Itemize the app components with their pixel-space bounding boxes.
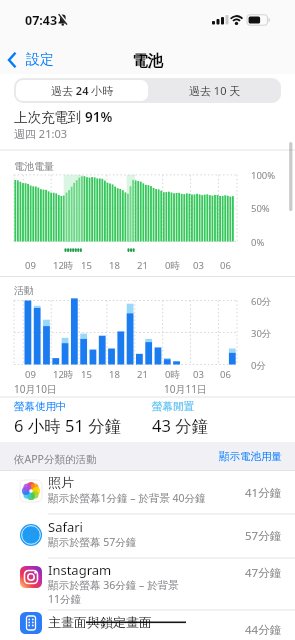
staticText: 顯示電池用量 [219,450,282,463]
staticText: 15 [81,368,92,381]
staticText: 0% [251,236,265,249]
button[interactable]: Safari [0,514,295,558]
staticText: 03 [193,368,204,381]
staticText: 過去 10 天 [189,83,241,98]
staticText: 12時 [53,259,74,272]
button[interactable]: 過去 10 天 [148,78,282,103]
staticText: 電池 [132,51,163,71]
staticText: 44分鐘 [245,622,282,638]
staticText: 09 [25,259,36,272]
staticText: 顯示於螢幕 36分鐘 – 於背景 [48,578,179,592]
staticText: 0時 [165,259,180,272]
staticText: 06 [220,368,231,381]
staticText: 照片 [48,474,74,490]
staticText: 100% [251,169,276,182]
staticText: 6 小時 51 分鐘 [14,414,122,437]
staticText: 11分鐘 [48,592,82,606]
staticText: 21 [137,259,148,272]
staticText: 10月11日 [164,382,207,396]
staticText: 依APP分類的活動 [14,452,97,466]
staticText: 12時 [53,368,74,381]
staticText: 09 [25,368,36,381]
staticText: 18 [109,259,120,272]
staticText: 03 [193,259,204,272]
staticText: 0時 [165,368,180,381]
button[interactable]: Instagram [0,558,295,610]
staticText: 57分鐘 [245,528,282,544]
staticText: Instagram [48,561,112,579]
staticText: 50% [251,202,270,215]
staticText: 43 分鐘 [152,414,209,437]
staticText: 顯示於螢幕 57分鐘 [48,535,137,549]
staticText: 電池電量 [14,160,54,173]
staticText: 10月10日 [14,382,57,396]
staticText: 30分 [251,327,272,340]
staticText: 設定 [26,51,54,69]
staticText: 螢幕閒置 [152,400,194,413]
staticText: 06 [220,259,231,272]
staticText: 0分 [251,359,266,372]
staticText: Safari [48,518,83,536]
staticText: 07:43 [25,12,58,29]
staticText: 41分鐘 [245,485,282,501]
staticText: 螢幕使用中 [14,400,67,413]
staticText: 主畫面與鎖定畫面 [48,614,152,630]
staticText: 上次充電到 91% [14,108,113,126]
staticText: 活動 [14,284,34,297]
staticText: 21 [137,368,148,381]
button[interactable]: 設定 [6,48,54,72]
button[interactable]: 照片 [0,471,295,514]
staticText: 15 [81,259,92,272]
staticText: 過去 24 小時 [51,83,114,98]
staticText: 60分 [251,295,272,308]
staticText: 18 [109,368,120,381]
staticText: 週四 21:03 [14,126,67,141]
staticText: 47分鐘 [245,565,282,581]
button[interactable]: 顯示電池用量 [182,450,282,468]
staticText: 顯示於螢幕1分鐘 – 於背景 40分鐘 [48,491,206,505]
button[interactable]: 過去 24 小時 [16,80,148,101]
button[interactable]: 主畫面與鎖定畫面 [0,610,295,640]
